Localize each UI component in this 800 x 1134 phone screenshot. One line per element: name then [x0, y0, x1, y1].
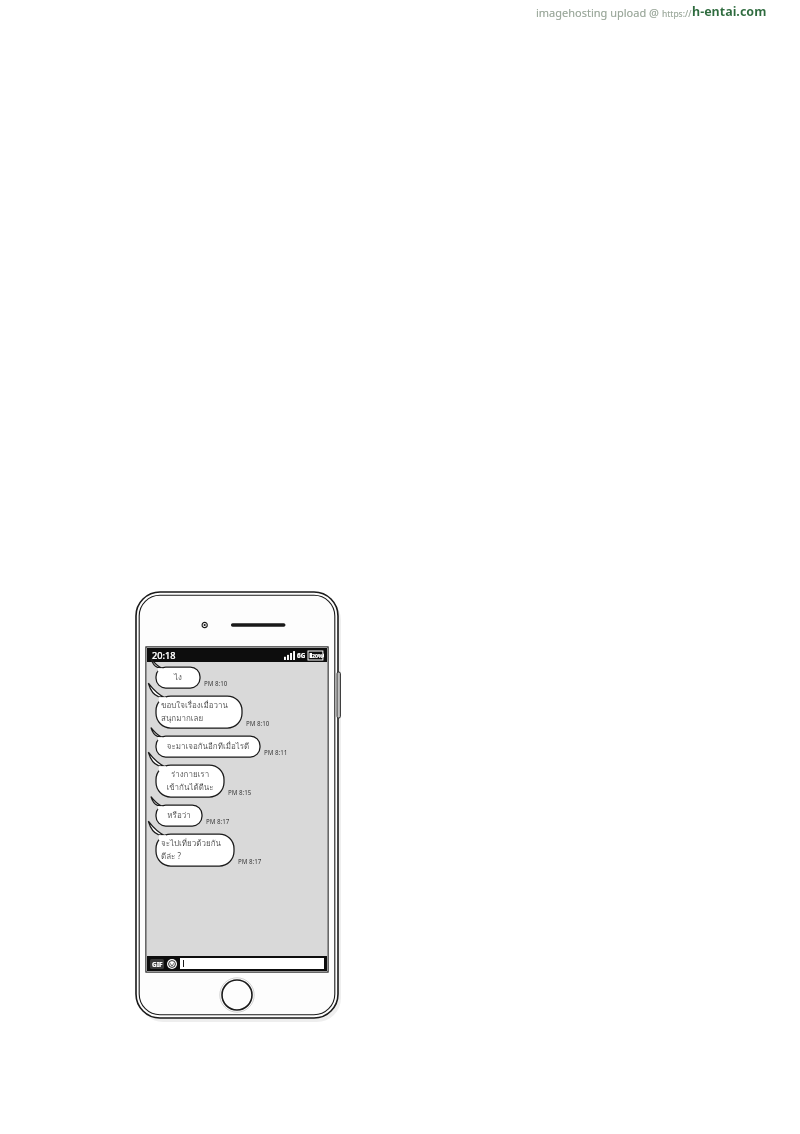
staticText: หรือว่า — [161, 809, 197, 822]
staticText: 20% — [312, 652, 323, 659]
button[interactable]: ไง — [156, 667, 228, 688]
staticText: PM 8:15 — [228, 788, 252, 796]
staticText: สนุกมากเลย — [161, 712, 237, 725]
staticText: imagehosting upload @ — [536, 5, 662, 20]
staticText: จะไปเที่ยวด้วยกัน — [161, 837, 229, 850]
staticText: ขอบใจเรื่องเมื่อวานนะ — [161, 699, 237, 712]
staticText: PM 8:10 — [246, 719, 270, 727]
staticText: PM 8:11 — [264, 748, 288, 756]
staticText: 6G — [297, 651, 306, 660]
staticText: เข้ากันได้ดีนะ — [161, 781, 219, 794]
button[interactable]: imagehosting watermark — [536, 3, 767, 20]
button[interactable]: Stickers — [167, 959, 177, 969]
staticText: PM 8:17 — [238, 857, 262, 865]
button[interactable]: Message input — [180, 958, 324, 969]
staticText: GIF — [152, 960, 163, 969]
staticText: 20:18 — [152, 649, 176, 662]
button[interactable]: จะไปเที่ยวด้วยกัน — [156, 834, 262, 866]
staticText: PM 8:10 — [204, 679, 228, 687]
button[interactable]: ขอบใจเรื่องเมื่อวานนะ — [156, 696, 270, 728]
staticText: ร่างกายเรา — [161, 768, 219, 781]
button[interactable]: จะมาเจอกันอีกทีเมื่อไรดี — [156, 736, 288, 757]
staticText: ดีล่ะ ? — [161, 850, 229, 863]
staticText: ไง — [161, 671, 195, 684]
staticText: จะมาเจอกันอีกทีเมื่อไรดี — [161, 740, 255, 753]
button[interactable]: GIF — [150, 959, 164, 969]
staticText: h-entai.com — [692, 3, 767, 20]
button[interactable]: หรือว่า — [156, 805, 230, 826]
button[interactable]: ร่างกายเรา — [156, 765, 252, 797]
staticText: PM 8:17 — [206, 817, 230, 825]
staticText: https:// — [662, 8, 692, 20]
